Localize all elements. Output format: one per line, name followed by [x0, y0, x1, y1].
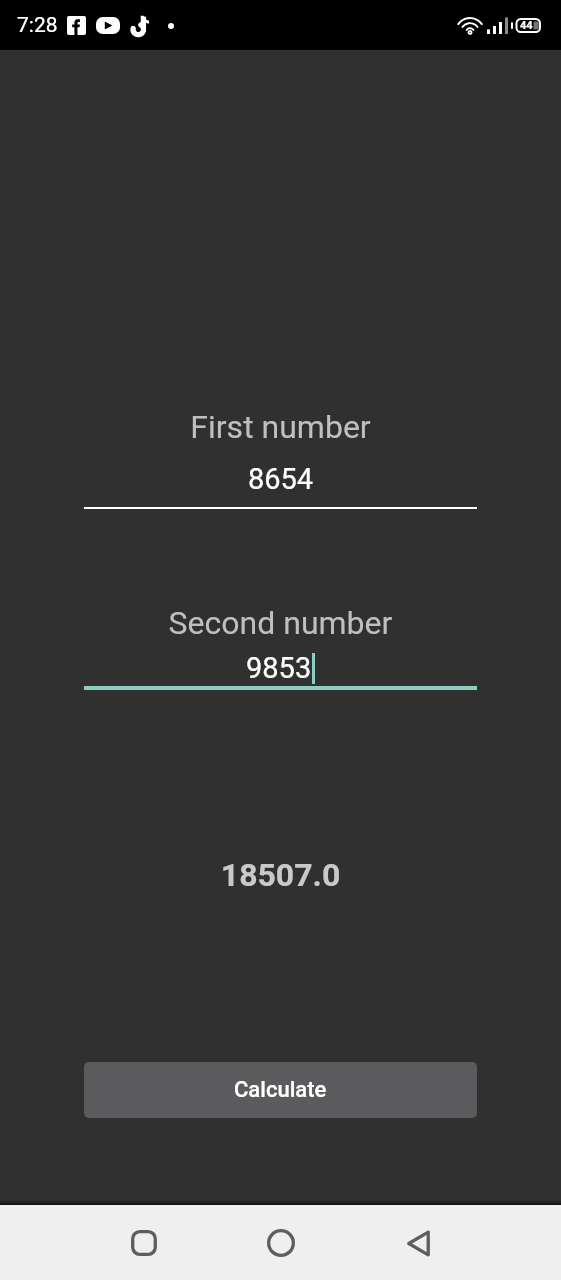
staticText: 9853 [246, 651, 312, 685]
staticText: 44 [520, 19, 533, 32]
staticText: First number [0, 408, 561, 446]
button[interactable]: First number input [84, 404, 477, 509]
staticText: Second number [0, 604, 561, 642]
button[interactable]: Back [392, 1217, 444, 1269]
button[interactable]: Recents [118, 1217, 170, 1269]
staticText: 7:28 [17, 13, 58, 38]
staticText: Calculate [234, 1077, 327, 1103]
staticText: 8654 [0, 462, 561, 496]
button[interactable]: Second number input [84, 600, 477, 690]
button[interactable]: Home [255, 1217, 307, 1269]
staticText: 18507.0 [0, 856, 561, 894]
button[interactable]: Calculate [84, 1062, 477, 1118]
